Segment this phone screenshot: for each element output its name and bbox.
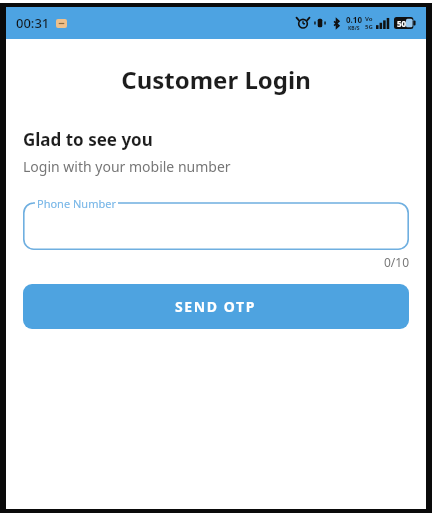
staticText: Customer Login bbox=[6, 63, 426, 96]
staticText: Glad to see you bbox=[23, 128, 153, 151]
staticText: 0/10 bbox=[23, 254, 409, 270]
staticText: 50 bbox=[397, 18, 407, 29]
staticText: Login with your mobile number bbox=[23, 157, 231, 176]
staticText: SEND OTP bbox=[175, 297, 257, 316]
staticText: Vo bbox=[365, 15, 373, 23]
staticText: 5G bbox=[365, 23, 373, 31]
button[interactable]: SEND OTP bbox=[23, 284, 409, 329]
staticText: 0.10 bbox=[346, 14, 362, 25]
staticText: 00:31 bbox=[16, 14, 50, 32]
button[interactable]: Phone Number bbox=[23, 196, 409, 250]
staticText: KB/S bbox=[348, 25, 360, 32]
staticText: Phone Number bbox=[37, 196, 116, 211]
